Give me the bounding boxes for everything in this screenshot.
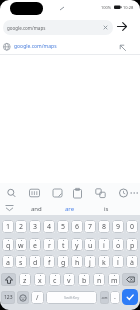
button[interactable]: 3 [29, 220, 41, 233]
button[interactable]: à [126, 255, 138, 268]
button[interactable]: are [55, 202, 85, 215]
staticText: is [104, 205, 109, 213]
button[interactable]: p [126, 238, 138, 251]
staticText: 2 [19, 222, 24, 232]
button[interactable] [129, 187, 140, 199]
staticText: y [75, 241, 79, 251]
button[interactable]: y [71, 238, 83, 251]
staticText: n [97, 276, 102, 286]
staticText: à [130, 258, 134, 268]
button[interactable]: 8 [98, 220, 110, 233]
staticText: 0 [130, 222, 135, 232]
button[interactable]: 7 [84, 220, 96, 233]
staticText: r [48, 241, 51, 251]
staticText: e [33, 241, 37, 251]
staticText: 8 [102, 222, 107, 232]
staticText: 123 [4, 294, 13, 301]
staticText: f [48, 258, 51, 268]
staticText: a [6, 258, 10, 268]
staticText: 5 [61, 222, 66, 232]
button[interactable]: 6 [71, 220, 83, 233]
button[interactable] [1, 273, 16, 286]
staticText: u [88, 241, 93, 251]
staticText: m [111, 276, 118, 286]
button[interactable] [17, 291, 29, 304]
staticText: google.com/maps [7, 25, 46, 31]
staticText: 10:28 [123, 5, 134, 10]
button[interactable]: r [43, 238, 55, 251]
staticText: k [102, 258, 106, 268]
button[interactable]: 0 [126, 220, 138, 233]
button[interactable]: 9 [112, 220, 124, 233]
staticText: l [117, 258, 119, 268]
button[interactable]: s [15, 255, 27, 268]
staticText: h [75, 258, 80, 268]
button[interactable] [117, 187, 130, 199]
button[interactable]: u [84, 238, 96, 251]
button[interactable]: SwiftKey [46, 291, 97, 304]
button[interactable] [122, 273, 138, 286]
button[interactable]: google.com/maps [0, 36, 140, 54]
button[interactable]: is [91, 202, 121, 215]
staticText: g [61, 258, 66, 268]
staticText: 4 [47, 222, 52, 232]
button[interactable]: o [112, 238, 124, 251]
button[interactable]: / [31, 291, 44, 304]
staticText: 7 [88, 222, 93, 232]
button[interactable]: c [49, 273, 61, 286]
staticText: w [18, 241, 24, 251]
button[interactable]: t [57, 238, 69, 251]
staticText: b [82, 276, 87, 286]
staticText: p [130, 241, 135, 251]
button[interactable] [51, 187, 64, 199]
button[interactable]: and [22, 202, 51, 215]
staticText: q [6, 241, 11, 251]
button[interactable]: q [2, 238, 14, 251]
staticText: .com [101, 296, 108, 300]
button[interactable]: a [2, 255, 14, 268]
staticText: t [62, 241, 65, 251]
button[interactable]: l [112, 255, 124, 268]
button[interactable]: z [19, 273, 31, 286]
button[interactable]: b [78, 273, 90, 286]
staticText: 100% [101, 5, 112, 10]
button[interactable]: 2 [15, 220, 27, 233]
button[interactable]: h [71, 255, 83, 268]
button[interactable]: .com [100, 291, 109, 304]
button[interactable]: 4 [43, 220, 55, 233]
button[interactable]: 5 [57, 220, 69, 233]
button[interactable]: e [29, 238, 41, 251]
button[interactable] [28, 187, 41, 199]
button[interactable] [1, 202, 18, 214]
button[interactable]: m [108, 273, 120, 286]
button[interactable]: . [110, 291, 120, 304]
button[interactable] [115, 19, 130, 34]
button[interactable]: g [57, 255, 69, 268]
button[interactable]: w [15, 238, 27, 251]
button[interactable]: d [29, 255, 41, 268]
button[interactable] [94, 187, 107, 199]
button[interactable] [71, 187, 84, 199]
staticText: x [38, 276, 42, 286]
staticText: o [116, 241, 121, 251]
staticText: google.com/maps [14, 43, 57, 50]
button[interactable]: f [43, 255, 55, 268]
staticText: / [36, 293, 39, 302]
staticText: SwiftKey [64, 295, 80, 300]
button[interactable]: v [63, 273, 75, 286]
staticText: z [23, 276, 27, 286]
button[interactable]: n [93, 273, 105, 286]
button[interactable]: x [34, 273, 46, 286]
button[interactable]: k [98, 255, 110, 268]
button[interactable]: i [98, 238, 110, 251]
button[interactable]: 123 [1, 291, 15, 304]
button[interactable]: j [84, 255, 96, 268]
staticText: . [114, 292, 116, 302]
staticText: 9 [116, 222, 121, 232]
button[interactable]: google.com/maps [3, 20, 113, 35]
staticText: j [89, 258, 91, 268]
button[interactable] [5, 187, 18, 199]
button[interactable] [122, 289, 138, 305]
button[interactable]: 1 [2, 220, 14, 233]
staticText: 1 [6, 222, 11, 232]
